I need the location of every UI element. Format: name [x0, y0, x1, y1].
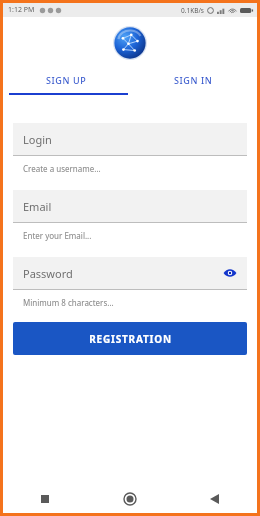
button[interactable]: SIGN IN: [130, 67, 257, 93]
staticText: 0.1KB/s: [181, 6, 204, 15]
staticText: 1:12 PM: [8, 5, 35, 15]
button[interactable]: SIGN UP: [3, 67, 130, 93]
staticText: SIGN UP: [46, 74, 87, 86]
button[interactable]: Home: [87, 485, 172, 513]
staticText: Login: [23, 132, 52, 147]
button[interactable]: Login: [13, 123, 247, 155]
button[interactable]: Recents: [3, 485, 87, 513]
staticText: REGISTRATION: [89, 332, 172, 346]
staticText: Password: [23, 266, 73, 281]
staticText: Enter your Email...: [23, 230, 92, 241]
button[interactable]: Back: [172, 485, 257, 513]
button[interactable]: REGISTRATION: [13, 322, 247, 355]
staticText: SIGN IN: [174, 74, 213, 86]
staticText: Create a username...: [23, 163, 101, 174]
button[interactable]: Show password: [221, 264, 239, 282]
staticText: Minimum 8 characters...: [23, 297, 114, 308]
button[interactable]: Email: [13, 190, 247, 222]
button[interactable]: Password: [13, 257, 247, 289]
staticText: Email: [23, 199, 52, 214]
